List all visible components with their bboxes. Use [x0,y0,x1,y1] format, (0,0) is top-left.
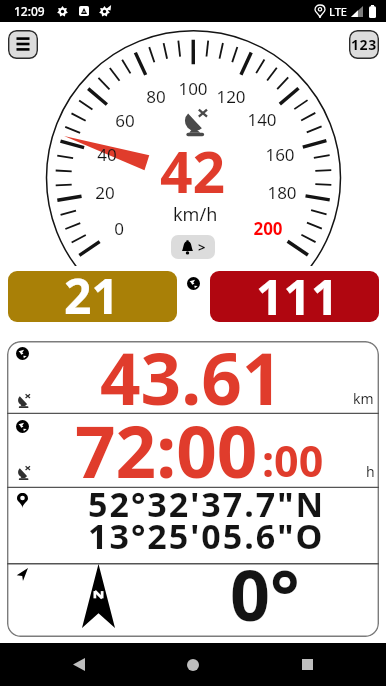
button[interactable]: Menu [8,30,38,59]
staticText: 80 [146,85,166,108]
staticText: 60 [115,109,135,132]
staticText: 100 [178,77,208,100]
staticText: 111 [256,264,339,329]
staticText: :00 [262,431,324,490]
staticText: 0 [114,217,124,240]
staticText: 40 [97,143,117,166]
staticText: 160 [265,143,295,166]
staticText: 120 [216,85,246,108]
staticText: 13°25'05.6"O [88,513,325,559]
button[interactable] [8,271,177,322]
staticText: 21 [64,263,119,328]
staticText: 0° [230,546,300,641]
staticText: 180 [267,181,297,204]
button[interactable] [7,487,379,563]
button[interactable]: Home [158,643,228,686]
staticText: 20 [95,181,115,204]
button[interactable]: Recents [272,643,342,686]
staticText: 72:00 [75,402,258,499]
button[interactable]: Speed alarm [171,235,215,259]
button[interactable] [210,271,379,322]
button[interactable] [7,341,379,413]
button[interactable]: Units [349,30,379,59]
staticText: > [198,238,206,256]
staticText: 200 [253,217,283,240]
staticText: 42 [160,132,226,210]
staticText: LTE [329,4,347,19]
button[interactable] [7,563,379,637]
button[interactable]: Back [44,643,114,686]
staticText: 43.61 [100,329,283,426]
staticText: h [366,462,375,481]
staticText: 123 [351,35,377,54]
staticText: 52°32'37.7"N [88,481,326,527]
staticText: km [353,389,374,408]
button[interactable] [7,413,379,487]
staticText: 140 [247,108,277,131]
staticText: 12:09 [14,3,45,19]
staticText: km/h [173,202,218,227]
